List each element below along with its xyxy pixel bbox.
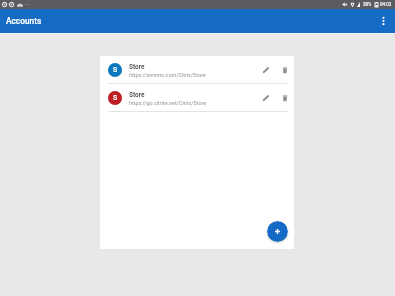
staticText: https://snnnnn.com/Citrix/Store <box>129 72 206 78</box>
button[interactable]: Edit <box>257 61 275 79</box>
staticText: S <box>113 94 118 102</box>
staticText: https://go.citrite.net/Citrix/Store <box>129 100 207 106</box>
staticText: ... <box>25 0 29 6</box>
button[interactable]: Delete <box>276 89 294 107</box>
button[interactable]: More options <box>373 11 393 31</box>
staticText: Accounts <box>6 16 42 26</box>
staticText: 38% <box>363 2 372 7</box>
button[interactable]: Edit <box>257 89 275 107</box>
staticText: Store <box>129 63 145 71</box>
button[interactable]: S <box>100 56 294 83</box>
staticText: S <box>113 66 118 74</box>
button[interactable]: Delete <box>276 61 294 79</box>
button[interactable]: S <box>100 84 294 111</box>
button[interactable]: Add account <box>267 221 288 242</box>
staticText: 04:02 <box>380 2 392 7</box>
staticText: Store <box>129 91 145 99</box>
